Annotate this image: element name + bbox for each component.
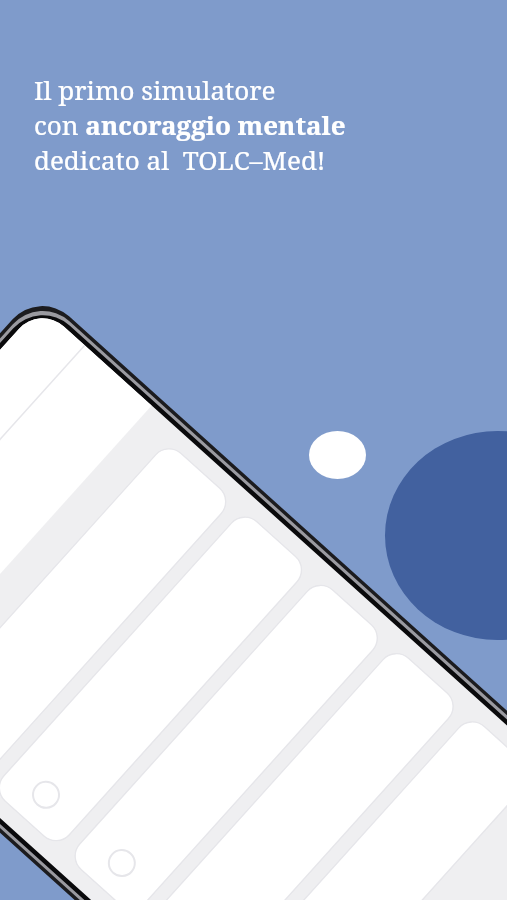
staticText: Il primo simulatore xyxy=(34,72,276,107)
staticText: dedicato al TOLC–Med! xyxy=(34,142,326,177)
button[interactable]: Il primo simulatore xyxy=(34,72,346,177)
staticText: con ancoraggio mentale xyxy=(34,107,346,142)
